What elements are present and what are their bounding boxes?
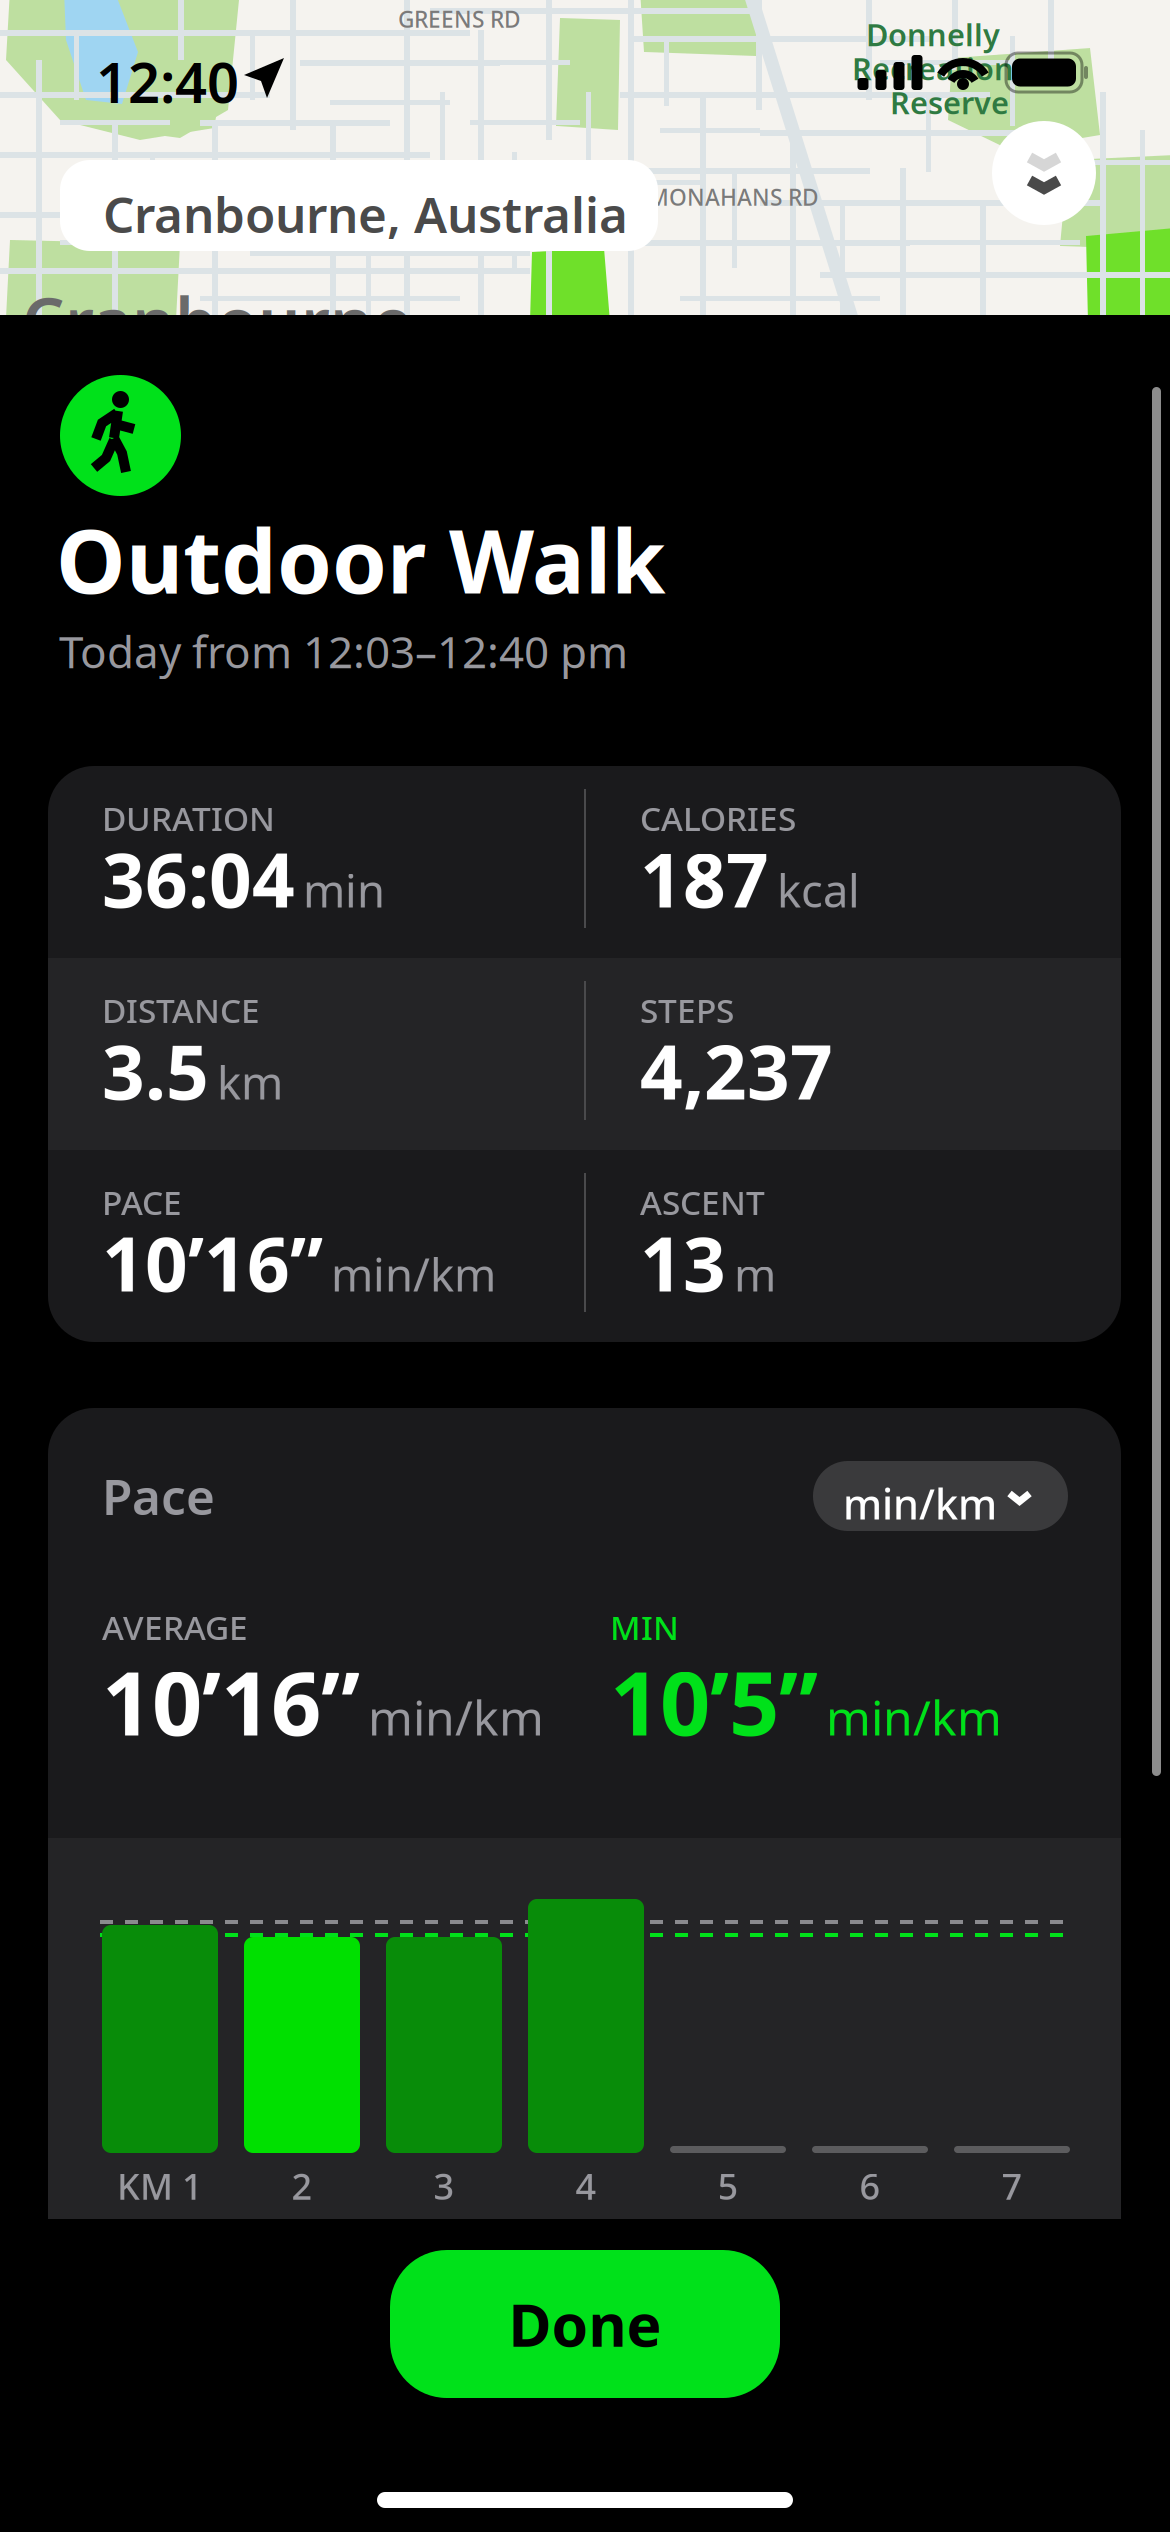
staticText: 10’5”: [610, 1643, 818, 1760]
staticText: PACE: [102, 1180, 182, 1224]
staticText: 5: [717, 2162, 738, 2210]
staticText: 4: [575, 2162, 596, 2210]
button[interactable]: Done: [390, 2250, 780, 2398]
staticText: MIN: [610, 1605, 679, 1649]
staticText: STEPS: [640, 988, 734, 1032]
staticText: Today from 12:03–12:40 pm: [59, 622, 628, 680]
staticText: min/km: [826, 1685, 1002, 1749]
staticText: Cranbourne: [22, 276, 412, 364]
staticText: DURATION: [102, 796, 275, 840]
staticText: 10’16”: [102, 1213, 323, 1312]
staticText: 13: [640, 1213, 726, 1312]
staticText: min/km: [331, 1244, 496, 1304]
staticText: Pace: [102, 1463, 215, 1528]
staticText: m: [734, 1244, 776, 1304]
staticText: Cranbourne, Australia: [103, 181, 628, 246]
staticText: min/km: [843, 1476, 997, 1531]
staticText: 3.5: [102, 1021, 209, 1120]
staticText: MONAHANS RD: [648, 182, 819, 212]
staticText: Done: [508, 2285, 661, 2363]
staticText: Outdoor Walk: [56, 501, 666, 618]
staticText: GREENS RD: [398, 4, 521, 34]
staticText: 36:04: [102, 829, 295, 928]
button[interactable]: Collapse map: [992, 121, 1096, 225]
staticText: 2: [291, 2162, 312, 2210]
staticText: km: [217, 1052, 283, 1112]
staticText: ASCENT: [640, 1180, 765, 1224]
staticText: 7: [1001, 2162, 1022, 2210]
staticText: 12:40: [96, 44, 239, 118]
staticText: KM 1: [117, 2162, 203, 2210]
staticText: kcal: [777, 860, 860, 920]
staticText: DISTANCE: [102, 988, 260, 1032]
staticText: CALORIES: [640, 796, 796, 840]
staticText: min/km: [368, 1685, 544, 1749]
staticText: Recreation: [852, 48, 1014, 89]
staticText: min: [303, 860, 385, 920]
staticText: 187: [640, 829, 769, 928]
staticText: Donnelly: [866, 14, 1000, 55]
staticText: 3: [433, 2162, 454, 2210]
staticText: 10’16”: [102, 1643, 360, 1760]
staticText: 4,237: [640, 1021, 833, 1120]
staticText: AVERAGE: [102, 1605, 248, 1649]
staticText: 6: [859, 2162, 880, 2210]
staticText: Reserve: [890, 82, 1009, 123]
button[interactable]: min/km: [813, 1461, 1068, 1531]
